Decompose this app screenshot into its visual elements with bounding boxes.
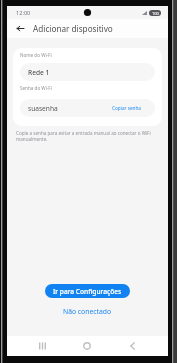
button[interactable]: Rede 1 bbox=[20, 63, 155, 81]
button[interactable]: Ir para Configurações bbox=[45, 284, 130, 298]
staticText: Copie a senha para evitar a entrada manu… bbox=[16, 130, 162, 142]
staticText: 100 bbox=[152, 11, 159, 16]
staticText: Não conectado bbox=[63, 307, 112, 316]
staticText: suasenha bbox=[28, 104, 58, 113]
button[interactable]: Não conectado bbox=[59, 306, 116, 317]
button[interactable]: Voltar bbox=[122, 336, 142, 356]
staticText: Ir para Configurações bbox=[53, 287, 122, 296]
staticText: Senha do Wi-Fi bbox=[20, 85, 52, 91]
staticText: Nome do Wi-Fi bbox=[20, 52, 52, 58]
staticText: Rede 1 bbox=[28, 68, 50, 77]
button[interactable]: Recentes bbox=[32, 336, 52, 356]
staticText: 12:00 bbox=[16, 9, 31, 17]
button[interactable]: Início bbox=[77, 336, 97, 356]
staticText: Adicionar dispositivo bbox=[33, 23, 113, 34]
button[interactable]: Voltar bbox=[12, 21, 27, 36]
staticText: Copiar senha bbox=[112, 105, 141, 111]
button[interactable]: Copiar senha bbox=[112, 105, 147, 111]
